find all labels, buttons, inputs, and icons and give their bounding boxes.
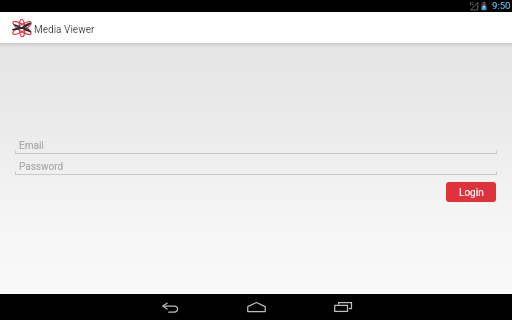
- staticText: 9:50: [492, 0, 511, 11]
- button[interactable]: Back: [146, 294, 194, 320]
- button[interactable]: Recent apps: [319, 294, 367, 320]
- staticText: Email: [19, 140, 44, 152]
- staticText: Media Viewer: [34, 24, 95, 36]
- staticText: Password: [19, 161, 64, 173]
- button[interactable]: Home: [232, 294, 280, 320]
- staticText: Login: [459, 187, 484, 199]
- button[interactable]: Login: [446, 182, 496, 202]
